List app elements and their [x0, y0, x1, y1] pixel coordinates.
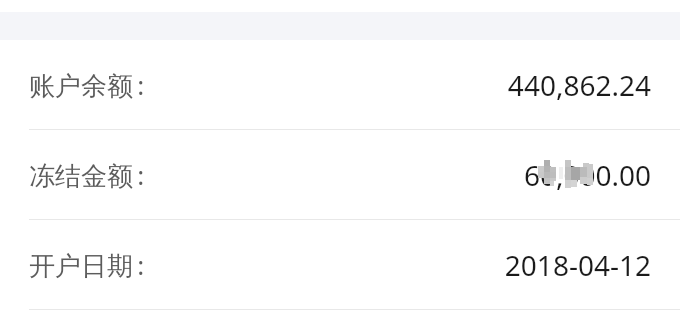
staticText: 440,862.24 — [507, 66, 651, 104]
button[interactable]: 开户日期 : — [0, 220, 680, 310]
staticText: 账户余额 : — [29, 67, 145, 103]
staticText: 冻结金额 : — [29, 157, 145, 193]
staticText: 开户日期 : — [29, 247, 145, 283]
button[interactable]: 账户余额 : — [0, 40, 680, 130]
button[interactable]: 冻结金额 : — [0, 130, 680, 220]
staticText: 2018-04-12 — [504, 246, 651, 284]
staticText: 60,000.00 — [523, 156, 651, 194]
